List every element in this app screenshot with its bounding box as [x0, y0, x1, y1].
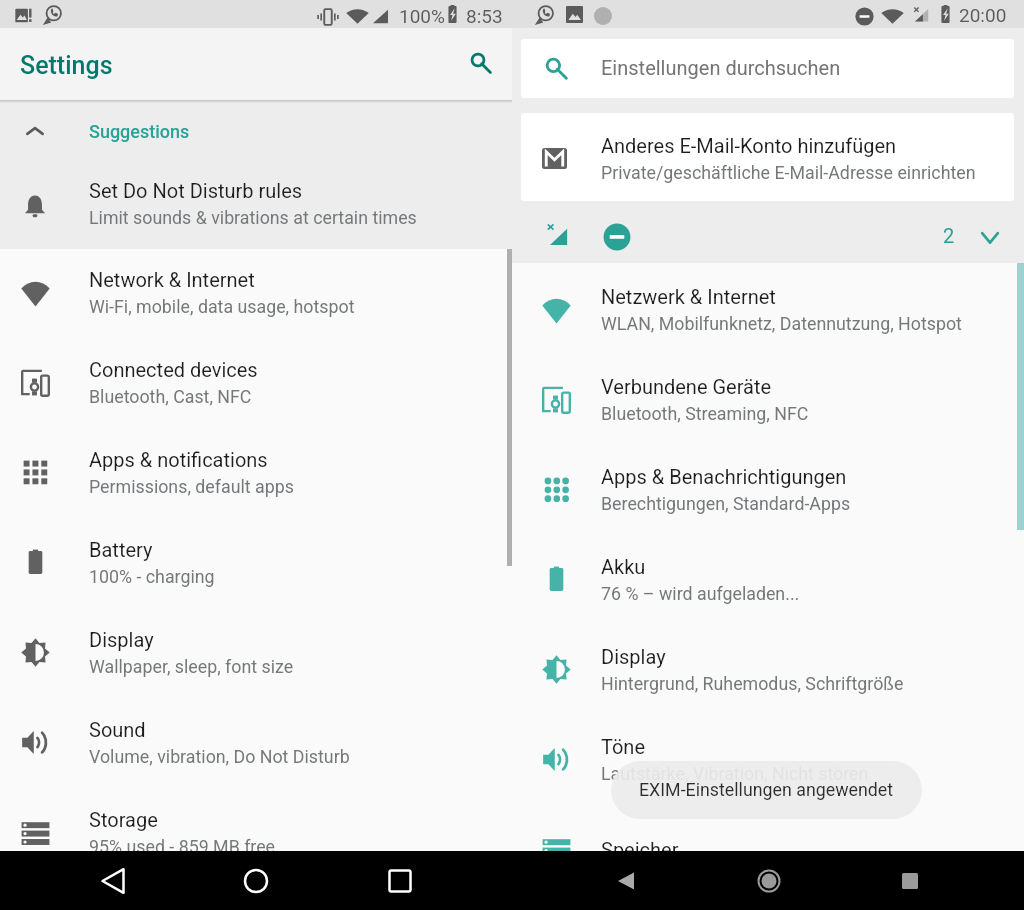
- button[interactable]: Home: [735, 851, 803, 910]
- button[interactable]: Töne: [512, 716, 1024, 806]
- button[interactable]: Anderes E-Mail-Konto hinzufügen: [521, 113, 1014, 201]
- staticText: WLAN, Mobilfunknetz, Datennutzung, Hotsp…: [601, 313, 962, 334]
- staticText: Storage: [89, 808, 158, 831]
- staticText: Lautstärke, Vibration, Nicht stören: [601, 763, 869, 784]
- staticText: Display: [601, 645, 666, 668]
- button[interactable]: Connected devices: [0, 339, 512, 429]
- button[interactable]: Apps & Benachrichtigungen: [512, 446, 1024, 536]
- staticText: Sound: [89, 718, 146, 741]
- staticText: Berechtigungen, Standard-Apps: [601, 493, 851, 514]
- button[interactable]: Recents: [876, 851, 944, 910]
- staticText: Apps & Benachrichtigungen: [601, 465, 847, 488]
- staticText: Bluetooth, Cast, NFC: [89, 386, 252, 407]
- staticText: Limit sounds & vibrations at certain tim…: [89, 207, 417, 228]
- staticText: Bluetooth, Streaming, NFC: [601, 403, 809, 424]
- button[interactable]: Battery: [0, 519, 512, 609]
- staticText: Set Do Not Disturb rules: [89, 179, 303, 202]
- button[interactable]: 2: [512, 209, 1024, 263]
- staticText: Töne: [601, 735, 646, 758]
- staticText: EXIM-Einstellungen angewendet: [639, 779, 894, 800]
- button[interactable]: Display: [512, 626, 1024, 716]
- button[interactable]: Netzwerk & Internet: [512, 266, 1024, 356]
- staticText: Anderes E-Mail-Konto hinzufügen: [601, 134, 897, 157]
- button[interactable]: Storage: [0, 789, 512, 879]
- button[interactable]: Speicher: [512, 806, 1024, 896]
- staticText: Display: [89, 628, 154, 651]
- staticText: 20:00: [959, 4, 1007, 26]
- staticText: 100% - charging: [89, 566, 215, 587]
- staticText: Private/geschäftliche E-Mail-Adresse ein…: [601, 162, 976, 183]
- staticText: Wi-Fi, mobile, data usage, hotspot: [89, 296, 355, 317]
- staticText: 95% used - 859 MB free: [89, 836, 276, 857]
- button[interactable]: Back: [79, 851, 147, 910]
- button[interactable]: Apps & notifications: [0, 429, 512, 519]
- button[interactable]: Recents: [366, 851, 434, 910]
- staticText: Settings: [20, 51, 113, 80]
- staticText: Akku: [601, 555, 646, 578]
- staticText: Battery: [89, 538, 153, 561]
- button[interactable]: Suggestions: [0, 100, 512, 162]
- button[interactable]: Network & Internet: [0, 249, 512, 339]
- button[interactable]: Back: [592, 851, 660, 910]
- staticText: Netzwerk & Internet: [601, 285, 776, 308]
- button[interactable]: Display: [0, 609, 512, 699]
- button[interactable]: Set Do Not Disturb rules: [0, 162, 512, 249]
- staticText: Volume, vibration, Do Not Disturb: [89, 746, 350, 767]
- staticText: Network & Internet: [89, 268, 255, 291]
- staticText: 76 % – wird aufgeladen...: [601, 583, 800, 604]
- staticText: Permissions, default apps: [89, 476, 294, 497]
- button[interactable]: Einstellungen durchsuchen: [521, 39, 1014, 98]
- button[interactable]: Sound: [0, 699, 512, 789]
- staticText: Apps & notifications: [89, 448, 268, 471]
- button[interactable]: Search: [457, 39, 501, 83]
- staticText: Verbundene Geräte: [601, 375, 772, 398]
- staticText: Suggestions: [89, 121, 190, 142]
- staticText: Connected devices: [89, 358, 258, 381]
- staticText: Wallpaper, sleep, font size: [89, 656, 294, 677]
- staticText: 100%: [399, 5, 445, 27]
- staticText: Hintergrund, Ruhemodus, Schriftgröße: [601, 673, 904, 694]
- staticText: 2: [943, 224, 955, 247]
- button[interactable]: Verbundene Geräte: [512, 356, 1024, 446]
- button[interactable]: Home: [222, 851, 290, 910]
- staticText: Einstellungen durchsuchen: [601, 56, 841, 79]
- staticText: 8:53: [466, 5, 503, 27]
- button[interactable]: Akku: [512, 536, 1024, 626]
- staticText: Speicher: [601, 838, 679, 861]
